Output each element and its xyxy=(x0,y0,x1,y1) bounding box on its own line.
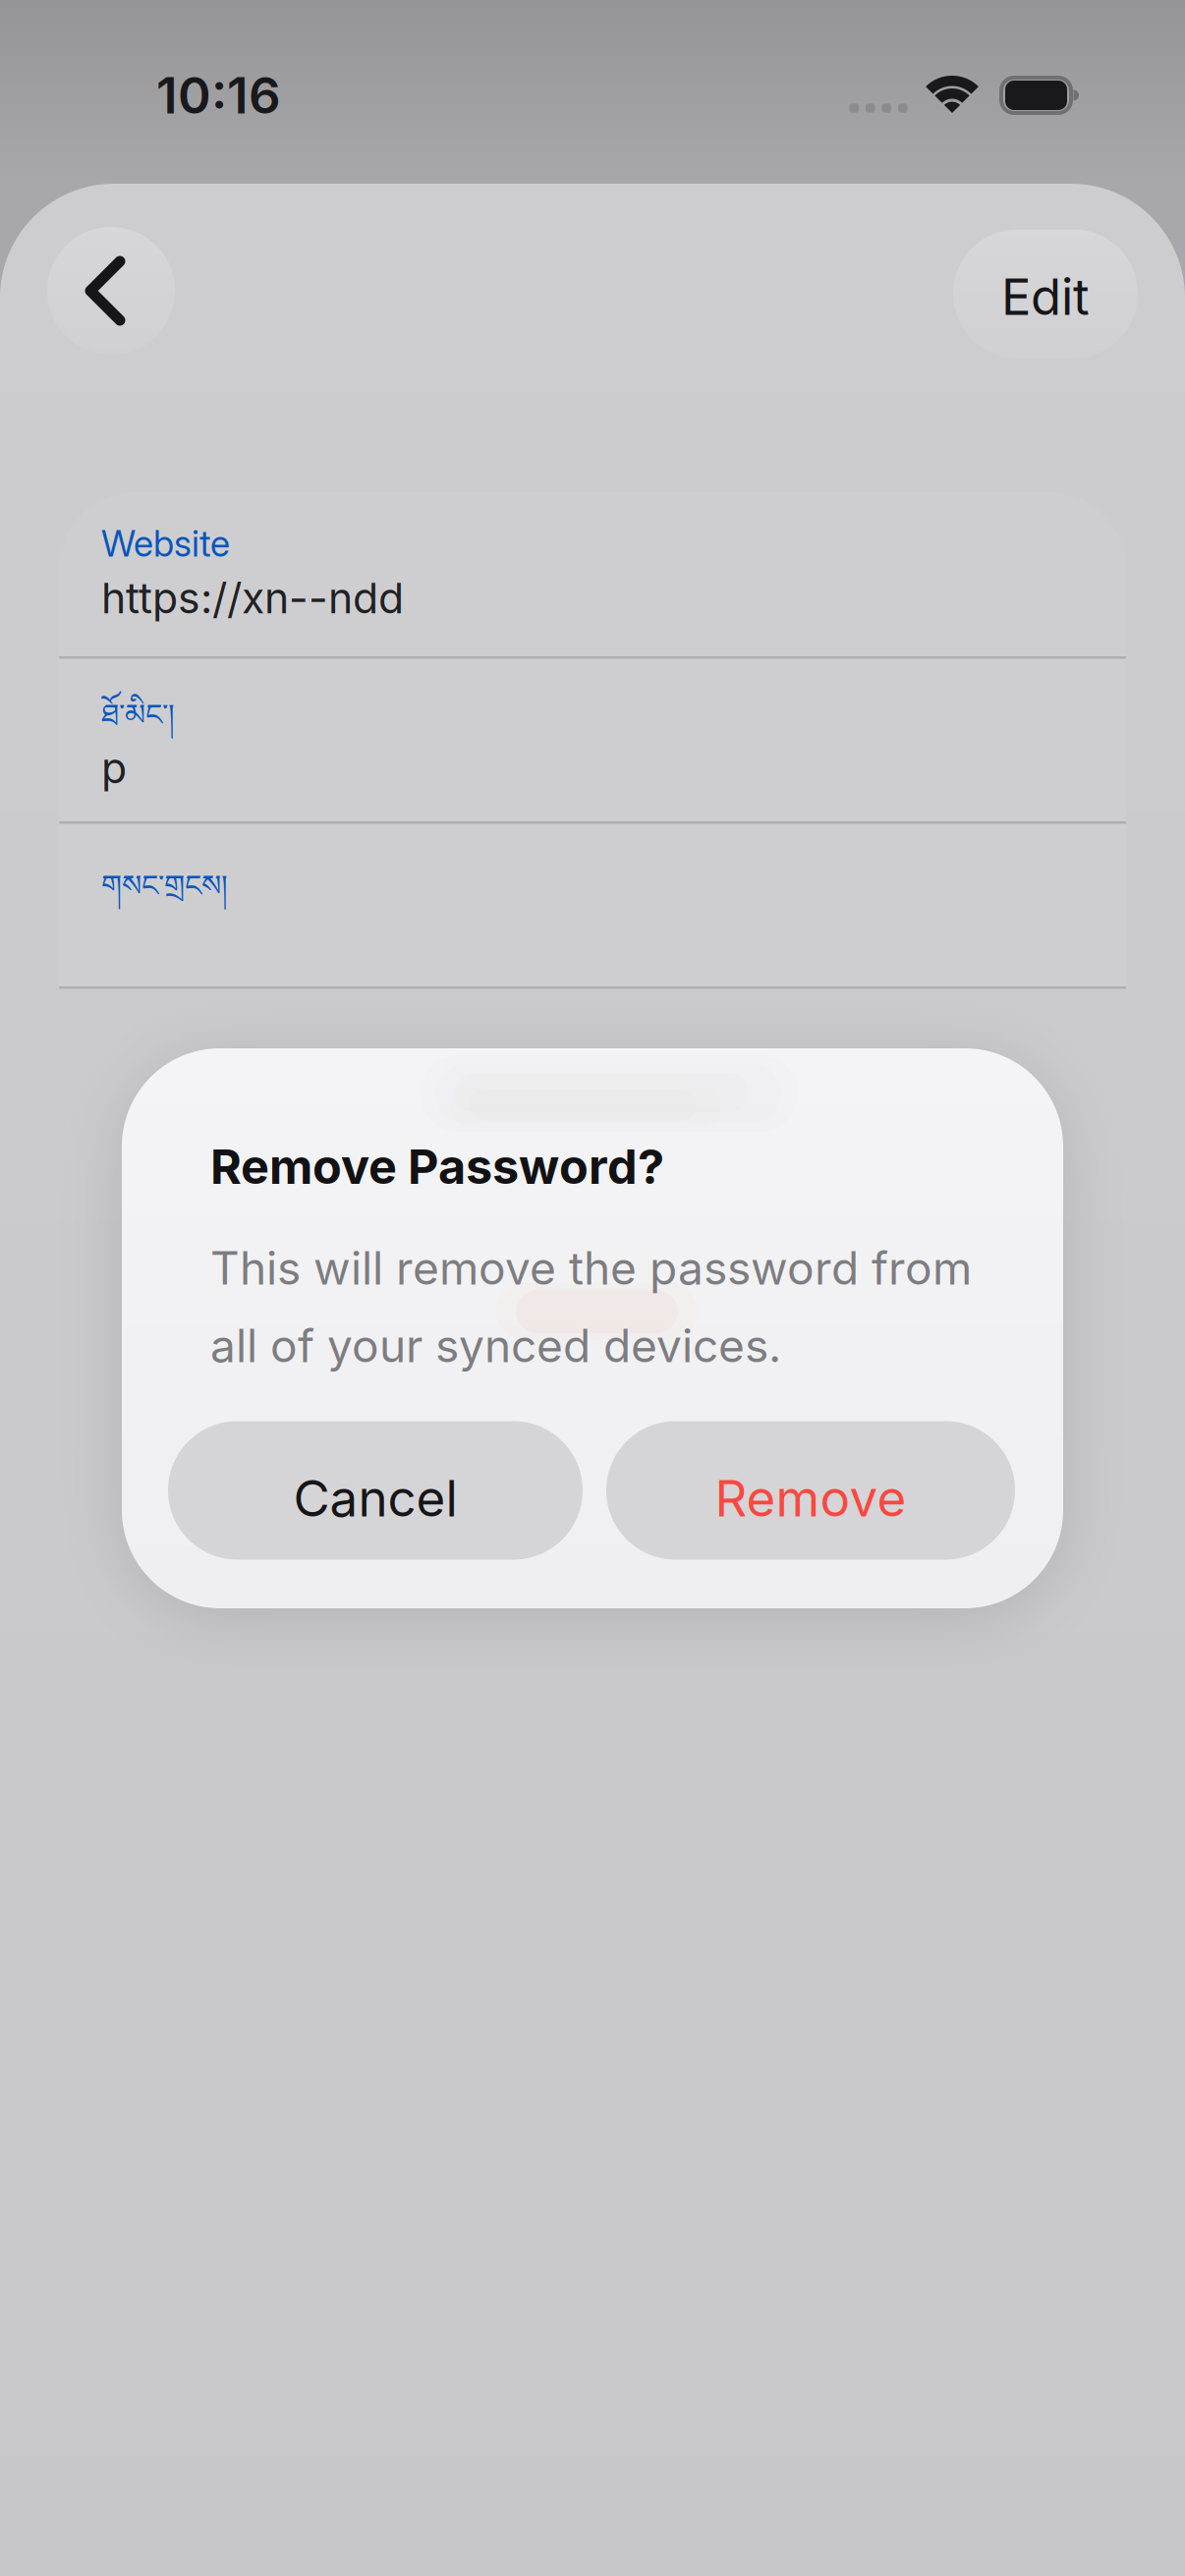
staticText: This will remove the password from xyxy=(210,1241,972,1296)
button[interactable]: Remove xyxy=(606,1421,1015,1560)
staticText: ཐོ་མིང་། xyxy=(101,682,175,765)
button[interactable]: Cancel xyxy=(168,1421,583,1560)
staticText: Edit xyxy=(1001,267,1090,327)
staticText: Remove Password? xyxy=(210,1138,664,1195)
staticText: Cancel xyxy=(293,1468,457,1529)
staticText: all of your synced devices. xyxy=(210,1318,781,1373)
button[interactable]: Edit xyxy=(953,229,1138,358)
staticText: Website xyxy=(101,522,230,565)
staticText: https://xn--ndd xyxy=(101,573,404,623)
staticText: p xyxy=(101,743,127,793)
staticText: Remove xyxy=(715,1468,906,1529)
button[interactable]: Back xyxy=(47,227,175,355)
staticText: 10:16 xyxy=(156,65,281,125)
staticText: གསང་གྲངས། xyxy=(101,853,228,936)
